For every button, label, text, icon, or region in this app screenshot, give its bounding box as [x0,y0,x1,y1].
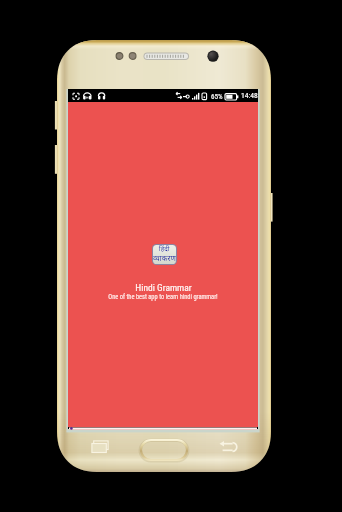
staticText: 14:48 [241,91,258,100]
button[interactable]: Back [214,437,240,459]
staticText: Hindi Grammar [135,282,192,293]
staticText: व्याकरण [153,254,176,264]
staticText: 65% [211,92,223,100]
staticText: One of the best app to learn hindi gramm… [108,293,218,301]
button[interactable]: Home [139,438,190,462]
staticText: हिंदी [159,245,170,254]
button[interactable]: Recent apps [86,435,114,459]
